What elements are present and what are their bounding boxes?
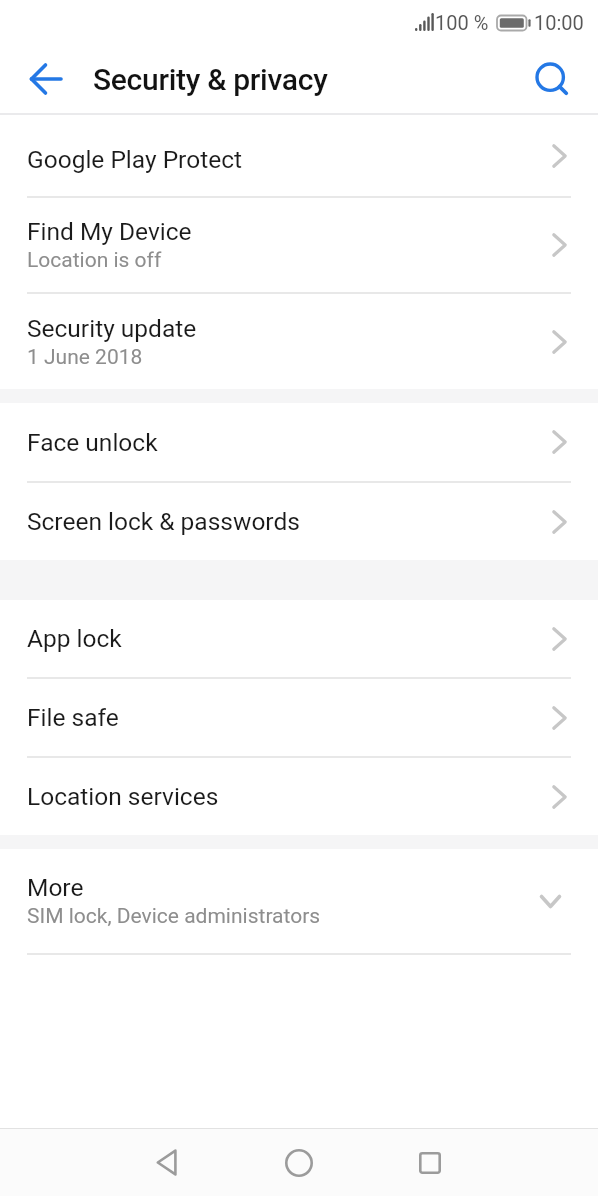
- staticText: Google Play Protect: [27, 145, 242, 174]
- staticText: 10:00: [534, 11, 584, 34]
- staticText: Security & privacy: [93, 62, 328, 97]
- staticText: Face unlock: [27, 428, 158, 457]
- staticText: File safe: [27, 703, 119, 732]
- staticText: Screen lock & passwords: [27, 507, 300, 536]
- staticText: SIM lock, Device administrators: [27, 904, 321, 929]
- staticText: Find My Device: [27, 217, 192, 246]
- staticText: 100 %: [435, 11, 489, 34]
- staticText: Location services: [27, 782, 219, 811]
- staticText: App lock: [27, 624, 122, 653]
- staticText: Location is off: [27, 248, 162, 273]
- staticText: Security update: [27, 314, 197, 343]
- staticText: 1 June 2018: [27, 345, 143, 370]
- staticText: More: [27, 873, 84, 902]
